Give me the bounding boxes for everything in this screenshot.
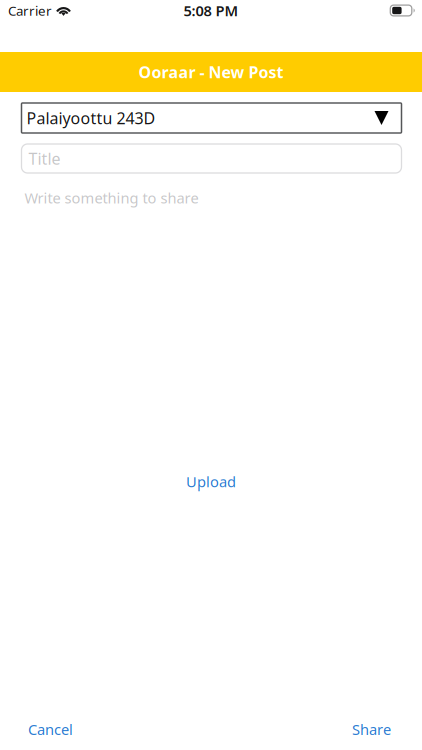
staticText: Carrier: [8, 2, 52, 19]
button[interactable]: Upload: [0, 466, 422, 496]
button[interactable]: Board: Palaiyoottu 243D: [21, 103, 401, 133]
button[interactable]: Write something to share: [21, 173, 401, 207]
staticText: Write something to share: [24, 188, 198, 207]
button[interactable]: Cancel: [20, 713, 81, 745]
staticText: Share: [352, 719, 391, 739]
staticText: Ooraar - New Post: [138, 61, 283, 83]
button[interactable]: Title: [21, 144, 401, 173]
staticText: 5:08 PM: [183, 1, 238, 20]
button[interactable]: Share: [344, 713, 399, 745]
staticText: Cancel: [28, 719, 73, 739]
staticText: Upload: [186, 472, 236, 491]
staticText: Palaiyoottu 243D: [26, 107, 155, 129]
staticText: Title: [28, 148, 60, 169]
